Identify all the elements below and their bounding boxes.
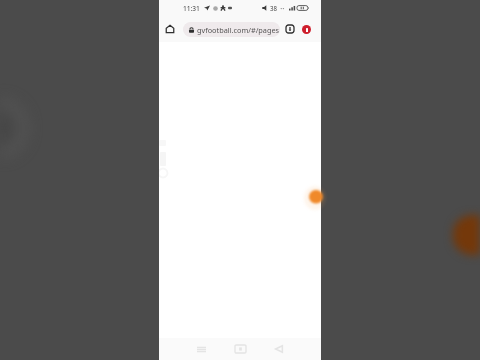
button[interactable]: Recent apps: [192, 340, 210, 358]
staticText: gvfootball.com/#/pages: [197, 25, 280, 35]
button[interactable]: Home: [231, 340, 249, 358]
staticText: 38: [270, 4, 278, 12]
button[interactable]: Back: [270, 340, 288, 358]
staticText: 11:31: [183, 4, 200, 13]
button[interactable]: Home: [159, 18, 181, 40]
button[interactable]: Downloads: [284, 19, 296, 39]
button[interactable]: Stop recording: [300, 19, 312, 39]
button[interactable]: gvfootball.com/#/pages: [183, 22, 280, 37]
button[interactable]: Open side panel: [308, 190, 322, 204]
